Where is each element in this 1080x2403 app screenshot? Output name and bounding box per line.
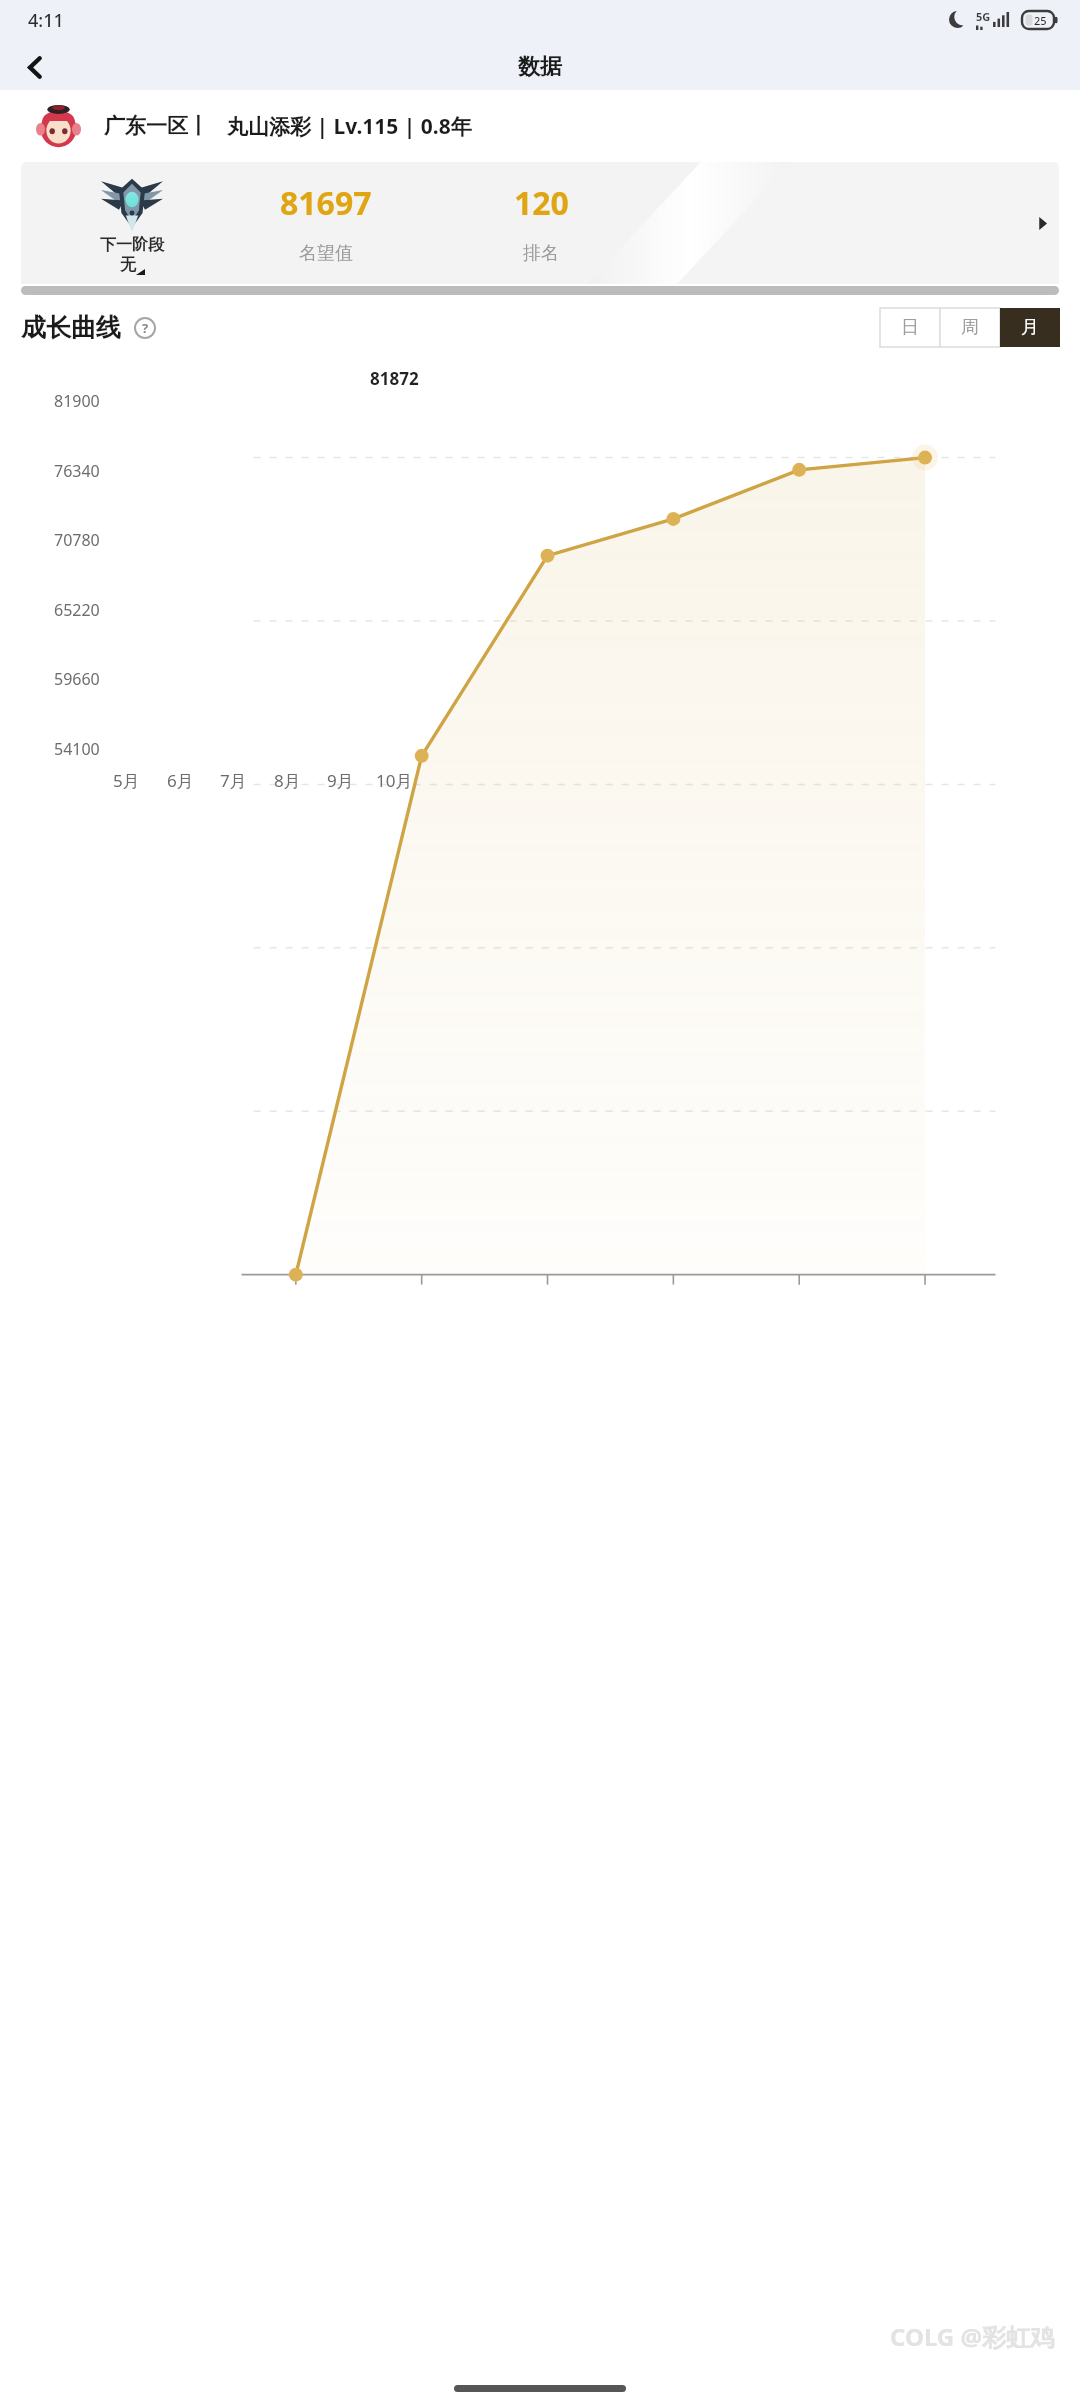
staticText: 76340 bbox=[54, 460, 100, 482]
staticText: 下一阶段 bbox=[100, 235, 164, 255]
staticText: 65220 bbox=[54, 599, 100, 621]
staticText: 9月 bbox=[327, 769, 354, 792]
staticText: 广东一区丨 bbox=[104, 113, 209, 139]
button[interactable]: 广东一区丨 bbox=[0, 90, 1080, 162]
button[interactable]: 月 bbox=[1000, 308, 1060, 347]
staticText: 月 bbox=[1021, 316, 1039, 339]
staticText: 无 bbox=[120, 255, 136, 275]
staticText: 81900 bbox=[54, 390, 100, 412]
staticText: 丸山添彩 | Lv.115 | 0.8年 bbox=[227, 112, 472, 141]
staticText: 数据 bbox=[518, 53, 562, 81]
staticText: 名望值 bbox=[299, 242, 353, 265]
staticText: 排名 bbox=[523, 242, 559, 265]
staticText: 120 bbox=[514, 181, 569, 225]
staticText: 5G bbox=[976, 9, 991, 24]
staticText: 成长曲线 bbox=[21, 312, 121, 343]
staticText: 81872 bbox=[370, 367, 419, 390]
staticText: 25 bbox=[1034, 13, 1047, 28]
staticText: 81697 bbox=[280, 181, 372, 225]
button[interactable]: Help bbox=[132, 315, 158, 341]
staticText: ? bbox=[142, 319, 149, 337]
staticText: 54100 bbox=[54, 738, 100, 760]
button[interactable]: 日 bbox=[880, 308, 940, 347]
staticText: 10月 bbox=[376, 769, 413, 792]
staticText: 70780 bbox=[54, 529, 100, 551]
staticText: 59660 bbox=[54, 668, 100, 690]
staticText: 日 bbox=[901, 316, 919, 339]
staticText: 7月 bbox=[220, 769, 247, 792]
button[interactable]: 周 bbox=[940, 308, 1000, 347]
staticText: 6月 bbox=[167, 769, 194, 792]
staticText: 8月 bbox=[274, 769, 301, 792]
button[interactable]: More stats bbox=[1025, 206, 1059, 240]
button[interactable]: Back bbox=[12, 44, 58, 90]
staticText: 5月 bbox=[113, 769, 140, 792]
button[interactable]: 下一阶段 bbox=[21, 162, 1059, 284]
staticText: 周 bbox=[961, 316, 979, 339]
staticText: 4:11 bbox=[28, 8, 64, 33]
staticText: COLG @彩虹鸡 bbox=[890, 2320, 1055, 2353]
